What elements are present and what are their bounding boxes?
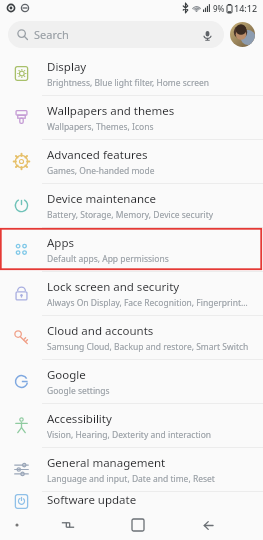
button[interactable]: Lock screen and security <box>0 272 263 315</box>
button[interactable]: Device maintenance <box>0 184 263 227</box>
staticText: Battery, Storage, Memory, Device securit… <box>47 209 214 221</box>
button[interactable]: Cloud and accounts <box>0 316 263 359</box>
staticText: Accessibility <box>47 411 112 427</box>
button[interactable]: General management <box>0 448 263 491</box>
staticText: Vision, Hearing, Dexterity and interacti… <box>47 429 212 441</box>
button[interactable]: Accessibility <box>0 404 263 447</box>
button[interactable]: Keyboard indicator <box>0 510 33 540</box>
button[interactable]: Google <box>0 360 263 403</box>
staticText: Lock screen and security <box>47 279 180 295</box>
button[interactable]: Display <box>0 52 263 95</box>
button[interactable]: Search <box>8 21 224 48</box>
button[interactable]: Advanced features <box>0 140 263 183</box>
button[interactable]: Voice search <box>199 27 215 43</box>
staticText: Software update <box>47 492 137 508</box>
staticText: Display <box>47 59 87 75</box>
staticText: Advanced features <box>47 147 148 163</box>
staticText: Search <box>34 27 69 42</box>
staticText: 14:12 <box>234 2 258 14</box>
staticText: Default apps, App permissions <box>47 253 169 265</box>
staticText: Wallpapers and themes <box>47 103 175 119</box>
staticText: Games, One-handed mode <box>47 165 155 177</box>
staticText: Samsung Cloud, Backup and restore, Smart… <box>47 341 249 353</box>
staticText: Apps <box>47 235 75 251</box>
staticText: 9% <box>213 3 225 14</box>
button[interactable]: Software update <box>0 492 263 510</box>
button[interactable]: Home <box>103 510 173 540</box>
staticText: Wallpapers, Themes, Icons <box>47 121 154 133</box>
staticText: Cloud and accounts <box>47 323 154 339</box>
staticText: Google <box>47 367 86 383</box>
button[interactable]: Account <box>230 22 255 47</box>
staticText: General management <box>47 455 166 471</box>
staticText: Always On Display, Face Recognition, Fin… <box>47 297 251 309</box>
button[interactable]: Recents <box>33 510 103 540</box>
staticText: Device maintenance <box>47 191 157 207</box>
button[interactable]: Back <box>173 510 243 540</box>
button[interactable]: Wallpapers and themes <box>0 96 263 139</box>
staticText: Brightness, Blue light filter, Home scre… <box>47 77 210 89</box>
staticText: Language and input, Date and time, Reset <box>47 473 215 485</box>
button[interactable]: Apps <box>0 228 263 271</box>
staticText: Google settings <box>47 385 110 397</box>
